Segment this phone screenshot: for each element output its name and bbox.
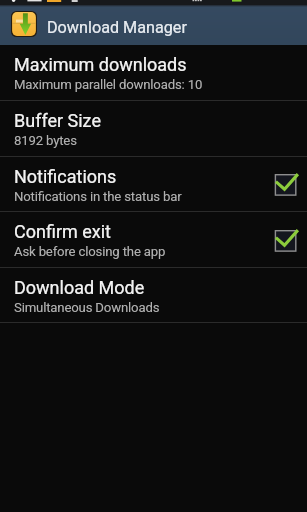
staticText: Notifications in the status bar	[14, 189, 182, 204]
button[interactable]: Buffer Size	[0, 101, 307, 156]
button[interactable]: Confirm exit	[0, 212, 307, 267]
button[interactable]: Maximum downloads	[0, 45, 307, 100]
button[interactable]: Download Mode	[0, 268, 307, 322]
button[interactable]: Toggle Notifications	[267, 166, 303, 202]
staticText: Confirm exit	[14, 221, 111, 242]
staticText: 8192 bytes	[14, 133, 77, 148]
staticText: Simultaneous Downloads	[14, 300, 160, 315]
staticText: Ask before closing the app	[14, 244, 166, 259]
staticText: Download Mode	[14, 277, 145, 298]
button[interactable]: Toggle Confirm exit	[267, 222, 303, 258]
staticText: Notifications	[14, 166, 117, 187]
staticText: Maximum parallel downloads: 10	[14, 77, 203, 92]
staticText: Buffer Size	[14, 110, 101, 131]
staticText: Maximum downloads	[14, 54, 187, 75]
button[interactable]: Notifications	[0, 157, 307, 211]
staticText: Download Manager	[47, 18, 187, 37]
